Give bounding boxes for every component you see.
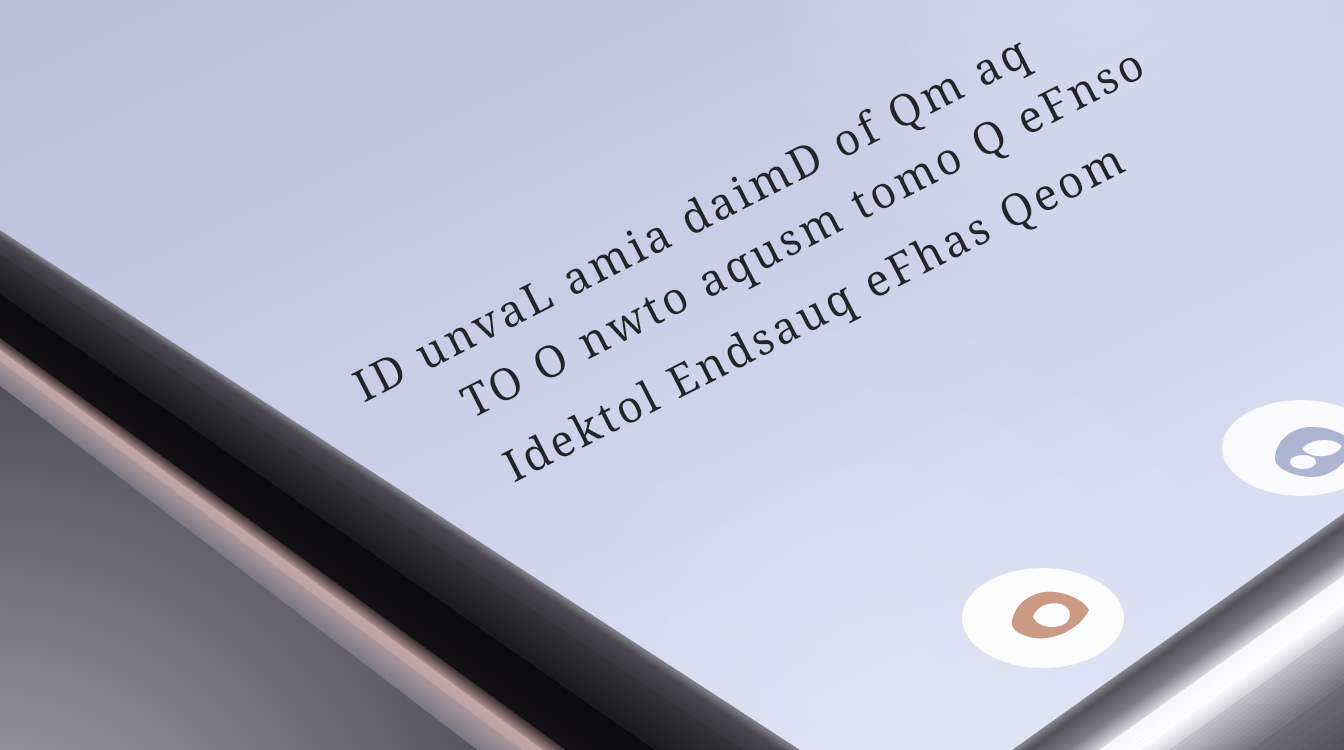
button[interactable]: Account — [1222, 400, 1344, 496]
button[interactable] — [0, 0, 1344, 750]
button[interactable]: Show details — [962, 568, 1124, 668]
